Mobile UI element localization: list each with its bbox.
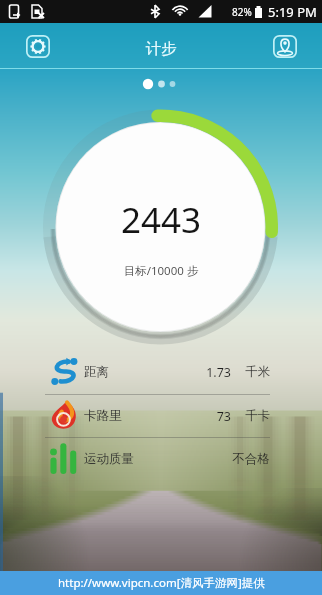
staticText: 不合格 — [190, 451, 270, 467]
staticText: 5:19 PM — [268, 3, 317, 21]
staticText: 1.73 — [160, 364, 231, 381]
staticText: 目标/10000 步 — [0, 263, 322, 279]
button[interactable]: Calories — [0, 394, 322, 437]
staticText: 计步 — [0, 39, 322, 59]
staticText: 运动质量 — [84, 451, 134, 467]
button[interactable]: Settings — [26, 35, 50, 58]
staticText: 73 — [160, 408, 231, 425]
staticText: 千米 — [190, 364, 270, 380]
button[interactable]: Distance — [0, 350, 322, 393]
staticText: 距离 — [84, 364, 109, 380]
staticText: 82% — [232, 5, 252, 19]
staticText: 千卡 — [190, 408, 270, 424]
button[interactable]: Profile — [273, 35, 297, 58]
staticText: 卡路里 — [84, 408, 122, 424]
staticText: http://www.vipcn.com[清风手游网]提供 — [58, 575, 265, 591]
button[interactable]: Exercise quality — [0, 437, 322, 480]
staticText: 2443 — [0, 196, 322, 244]
